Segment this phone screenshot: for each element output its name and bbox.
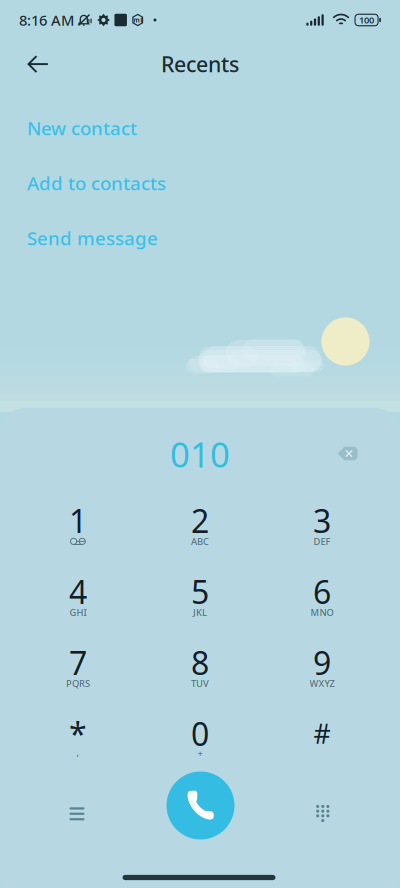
staticText: 7 bbox=[69, 641, 87, 684]
button[interactable]: Delete bbox=[324, 432, 370, 474]
staticText: # bbox=[313, 716, 330, 751]
staticText: 1 bbox=[69, 499, 87, 542]
staticText: PQRS bbox=[66, 677, 90, 690]
staticText: 3 bbox=[313, 499, 331, 542]
button[interactable]: 5 bbox=[139, 558, 261, 629]
staticText: 8:16 AM bbox=[19, 10, 74, 30]
button[interactable]: New contact bbox=[0, 103, 400, 153]
staticText: New contact bbox=[27, 116, 137, 140]
button[interactable]: Keypad bbox=[300, 790, 346, 836]
button[interactable]: 6 bbox=[261, 558, 383, 629]
button[interactable]: 2 bbox=[139, 487, 261, 558]
button[interactable]: 0 bbox=[139, 700, 261, 771]
staticText: JKL bbox=[193, 606, 207, 619]
staticText: Recents bbox=[161, 50, 239, 78]
staticText: , bbox=[76, 746, 79, 759]
staticText: Send message bbox=[27, 226, 158, 250]
staticText: + bbox=[197, 747, 202, 760]
button[interactable]: 9 bbox=[261, 629, 383, 700]
button[interactable]: # bbox=[261, 700, 383, 771]
staticText: 4 bbox=[69, 570, 87, 613]
staticText: 9 bbox=[313, 641, 331, 684]
staticText: 8 bbox=[191, 641, 209, 684]
button[interactable]: Add to contacts bbox=[0, 158, 400, 208]
staticText: 0 bbox=[191, 712, 209, 755]
staticText: 2 bbox=[191, 499, 209, 542]
button[interactable]: 4 bbox=[17, 558, 139, 629]
button[interactable]: Call bbox=[162, 767, 238, 843]
button[interactable]: 1 bbox=[17, 487, 139, 558]
staticText: Add to contacts bbox=[27, 171, 166, 195]
staticText: 100 bbox=[359, 14, 374, 26]
staticText: MNO bbox=[310, 606, 333, 619]
staticText: WXYZ bbox=[309, 677, 334, 690]
button[interactable]: 7 bbox=[17, 629, 139, 700]
button[interactable]: Back bbox=[14, 40, 62, 88]
staticText: mi bbox=[133, 16, 142, 24]
staticText: ABC bbox=[191, 535, 209, 548]
button[interactable]: 8 bbox=[139, 629, 261, 700]
staticText: 6 bbox=[313, 570, 331, 613]
staticText: TUV bbox=[191, 677, 209, 690]
button[interactable]: Send message bbox=[0, 213, 400, 263]
button[interactable]: * bbox=[17, 700, 139, 771]
staticText: GHI bbox=[69, 606, 86, 619]
staticText: DEF bbox=[313, 535, 330, 548]
staticText: * bbox=[69, 712, 87, 755]
staticText: 5 bbox=[191, 570, 209, 613]
button[interactable]: 3 bbox=[261, 487, 383, 558]
staticText: 010 bbox=[170, 431, 230, 477]
button[interactable]: Call log bbox=[54, 791, 100, 837]
